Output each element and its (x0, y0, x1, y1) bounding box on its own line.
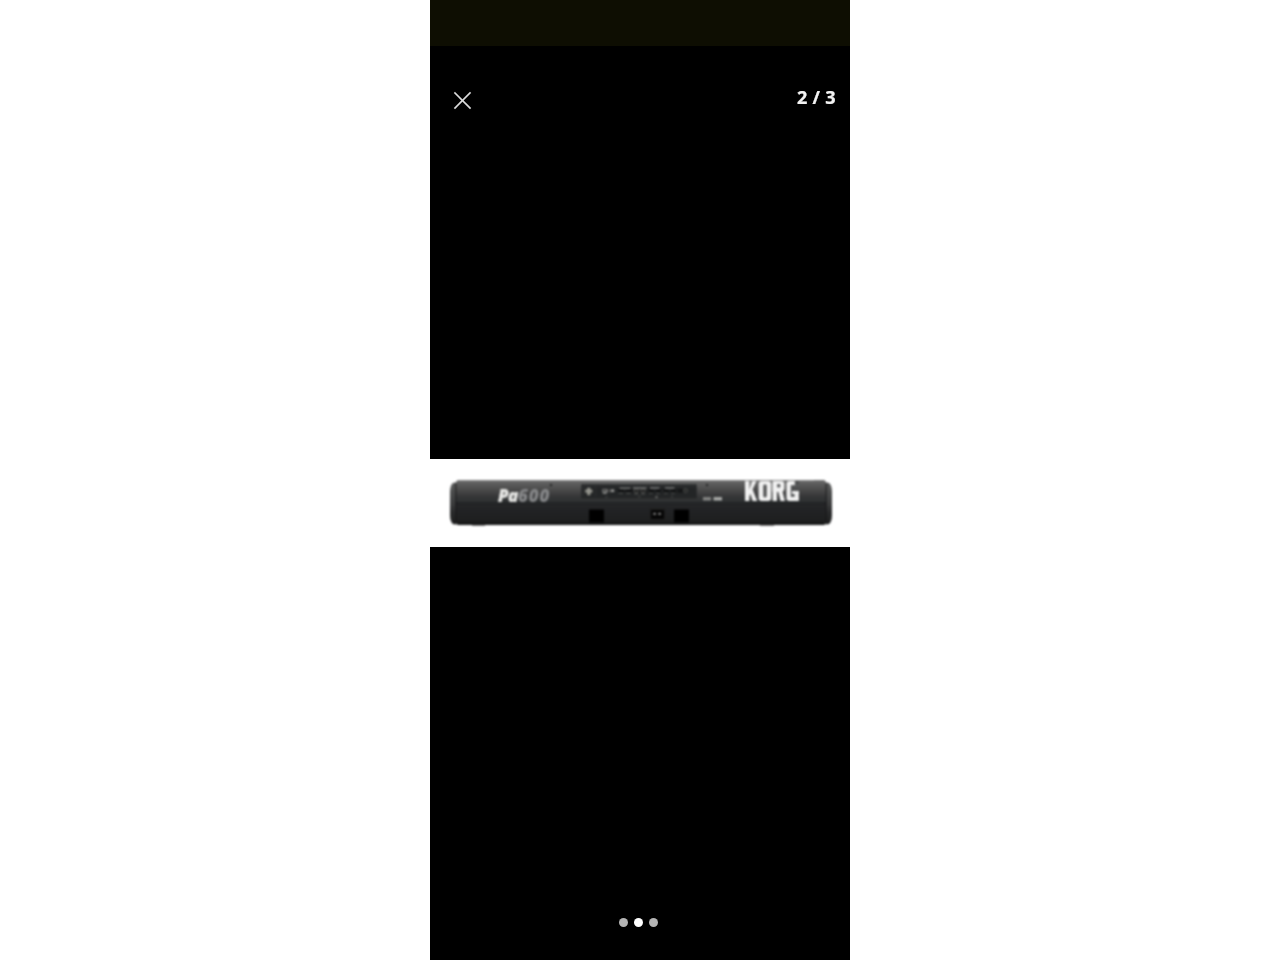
button[interactable]: Product photo (430, 459, 850, 547)
button[interactable]: Page indicator (649, 918, 658, 927)
button[interactable]: 2 / 3 (797, 75, 836, 119)
staticText: 600 (518, 484, 551, 507)
button[interactable]: Page indicator (634, 918, 643, 927)
button[interactable]: Close (438, 76, 486, 124)
button[interactable]: Page indicator (619, 918, 628, 927)
staticText: 2 / 3 (797, 85, 836, 110)
staticText: Pa (498, 484, 518, 507)
